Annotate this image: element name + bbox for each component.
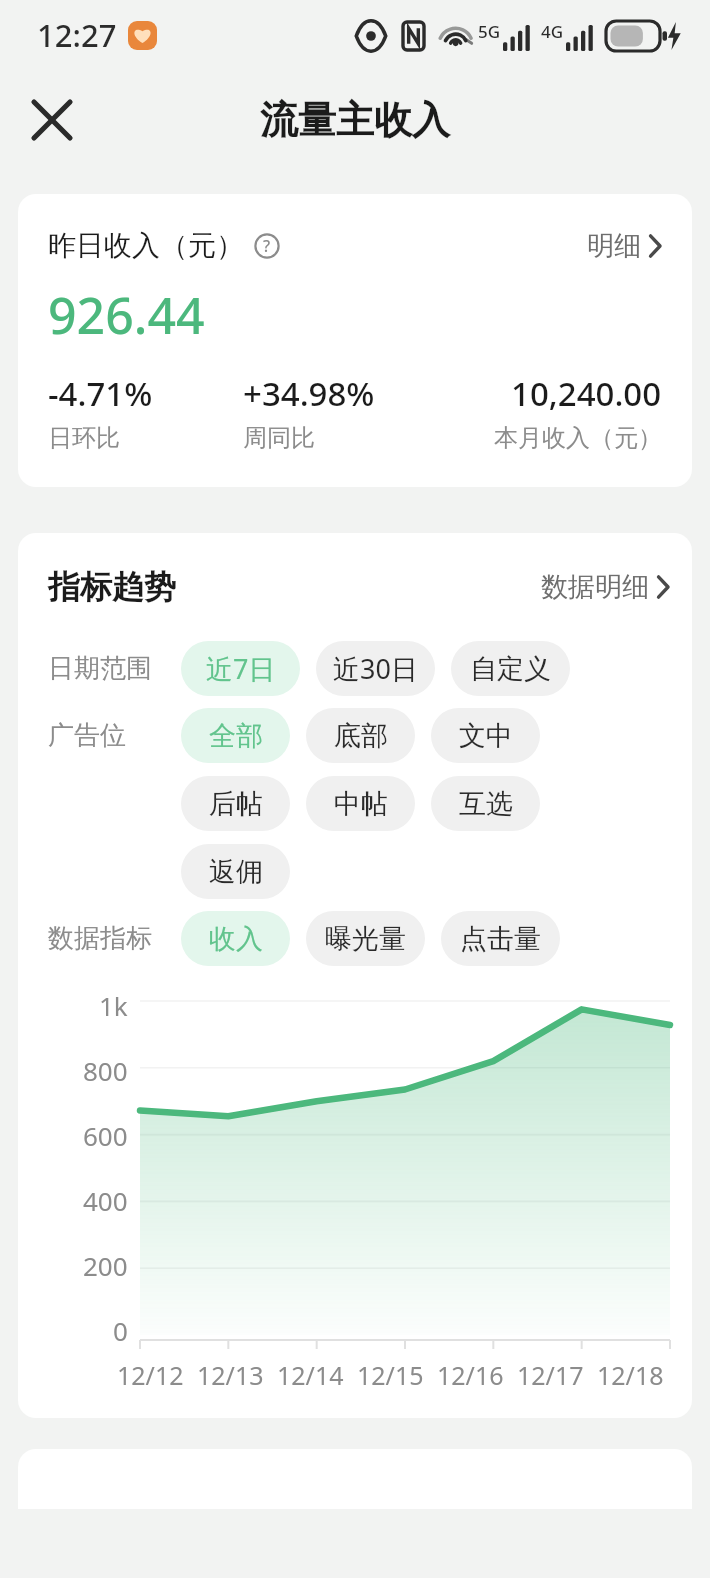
staticText: 近7日: [206, 650, 276, 687]
button[interactable]: Help: [252, 231, 282, 261]
staticText: 近30日: [333, 650, 418, 687]
staticText: 文中: [459, 719, 513, 753]
button[interactable]: 近7日: [181, 641, 300, 696]
staticText: 600: [83, 1118, 128, 1153]
staticText: 本月收入（元）: [494, 423, 662, 453]
button[interactable]: 明细: [587, 229, 662, 263]
staticText: 数据指标: [48, 922, 152, 955]
button[interactable]: 返佣: [181, 844, 290, 899]
staticText: 曝光量: [325, 922, 406, 956]
staticText: 12/18: [597, 1358, 664, 1392]
staticText: ?: [263, 235, 271, 257]
staticText: 广告位: [48, 719, 126, 752]
staticText: 4G: [541, 20, 564, 43]
staticText: -4.71%: [48, 371, 153, 416]
staticText: 日期范围: [48, 652, 152, 685]
staticText: 日环比: [48, 423, 120, 453]
staticText: 400: [83, 1183, 128, 1218]
button[interactable]: 后帖: [181, 776, 290, 831]
button[interactable]: 点击量: [441, 911, 560, 966]
staticText: 全部: [209, 719, 263, 753]
staticText: 流量主收入: [260, 96, 450, 144]
button[interactable]: 底部: [306, 708, 415, 763]
staticText: 点击量: [460, 922, 541, 956]
staticText: 12:27: [37, 14, 117, 56]
staticText: 数据明细: [541, 570, 649, 604]
staticText: 底部: [334, 719, 388, 753]
staticText: 后帖: [209, 787, 263, 821]
button[interactable]: 全部: [181, 708, 290, 763]
button[interactable]: 互选: [431, 776, 540, 831]
staticText: 12/13: [197, 1358, 264, 1392]
staticText: 指标趋势: [48, 567, 176, 607]
staticText: 12/17: [517, 1358, 584, 1392]
staticText: 800: [83, 1053, 128, 1088]
staticText: 互选: [459, 787, 513, 821]
staticText: 926.44: [48, 281, 205, 349]
button[interactable]: 自定义: [451, 641, 570, 696]
staticText: 返佣: [209, 855, 263, 889]
staticText: 12/15: [357, 1358, 424, 1392]
staticText: 12/12: [117, 1358, 184, 1392]
staticText: 12/16: [437, 1358, 504, 1392]
staticText: 中帖: [334, 787, 388, 821]
button[interactable]: 曝光量: [306, 911, 425, 966]
staticText: +34.98%: [243, 371, 375, 416]
button[interactable]: Close: [16, 84, 88, 156]
staticText: 昨日收入（元）: [48, 228, 244, 263]
button[interactable]: 数据明细: [541, 570, 670, 604]
button[interactable]: 收入: [181, 911, 290, 966]
staticText: 周同比: [243, 423, 315, 453]
staticText: 5G: [478, 20, 501, 43]
staticText: 10,240.00: [511, 371, 662, 416]
staticText: 自定义: [470, 652, 551, 686]
button[interactable]: 文中: [431, 708, 540, 763]
staticText: 明细: [587, 229, 641, 263]
staticText: 0: [113, 1313, 128, 1348]
button[interactable]: 中帖: [306, 776, 415, 831]
button[interactable]: 近30日: [316, 641, 435, 696]
staticText: 200: [83, 1248, 128, 1283]
staticText: 1k: [99, 988, 128, 1023]
staticText: 12/14: [277, 1358, 344, 1392]
staticText: 收入: [209, 922, 263, 956]
